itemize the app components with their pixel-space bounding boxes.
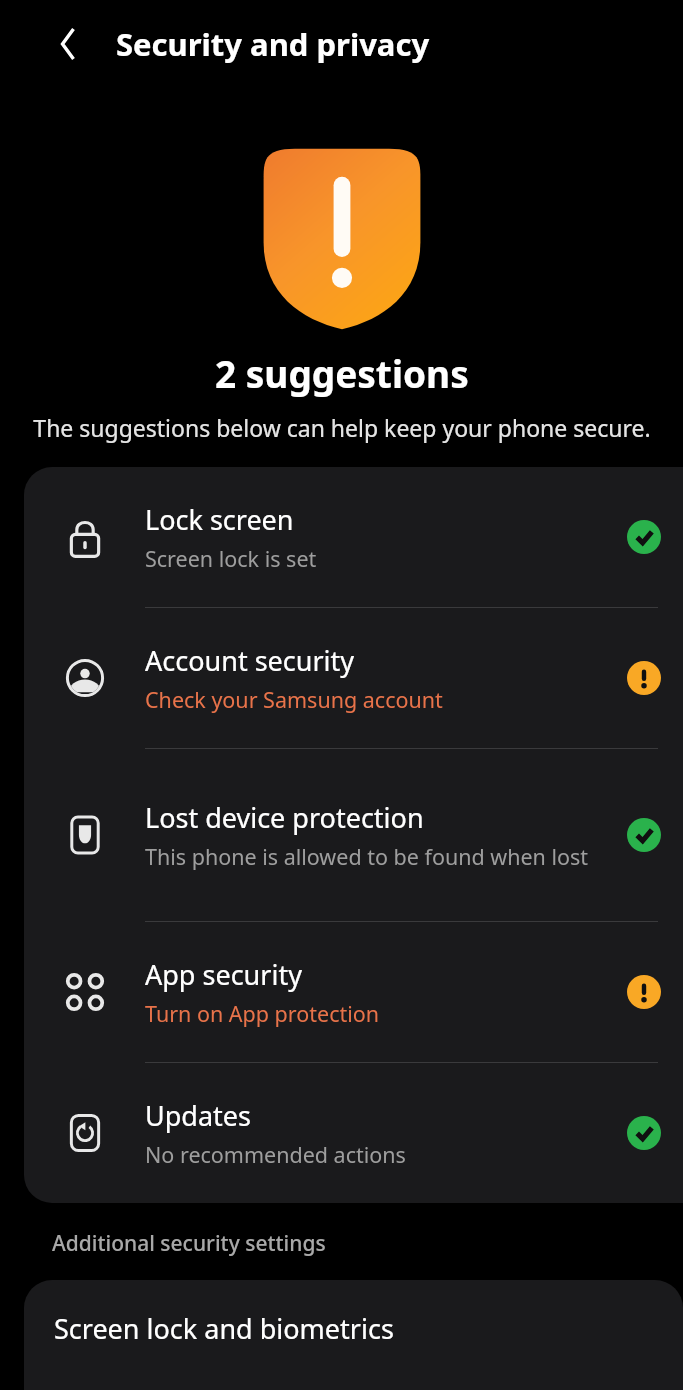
button[interactable]: Back — [44, 20, 92, 68]
button[interactable]: App security — [24, 922, 683, 1063]
staticText: No recommended actions — [145, 1140, 406, 1169]
staticText: The suggestions below can help keep your… — [33, 412, 651, 443]
button[interactable]: Updates — [24, 1063, 683, 1203]
staticText: Updates — [145, 1097, 252, 1134]
staticText: Account security — [145, 642, 355, 679]
staticText: 2 suggestions — [215, 348, 469, 398]
staticText: This phone is allowed to be found when l… — [145, 842, 589, 871]
staticText: Lock screen — [145, 501, 294, 538]
button[interactable]: Account security — [24, 608, 683, 749]
staticText: Screen lock is set — [145, 544, 317, 573]
button[interactable]: Lock screen — [24, 467, 683, 608]
staticText: Security and privacy — [116, 23, 430, 65]
staticText: Screen lock and biometrics — [54, 1310, 394, 1347]
staticText: Additional security settings — [52, 1229, 326, 1258]
staticText: Turn on App protection — [145, 999, 380, 1028]
button[interactable]: Screen lock and biometrics — [24, 1280, 683, 1390]
staticText: Lost device protection — [145, 799, 424, 836]
staticText: Check your Samsung account — [145, 685, 443, 714]
staticText: App security — [145, 956, 302, 993]
button[interactable]: Lost device protection — [24, 749, 683, 922]
